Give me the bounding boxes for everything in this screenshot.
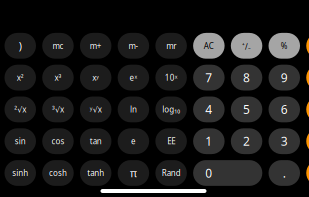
staticText: mc: [52, 40, 63, 51]
staticText: 1: [205, 133, 212, 149]
staticText: eˣ: [129, 72, 137, 83]
button[interactable]: x³: [42, 65, 74, 90]
button[interactable]: ×: [306, 65, 309, 90]
staticText: 9: [281, 70, 288, 85]
button[interactable]: sinh: [4, 160, 36, 186]
button[interactable]: ln: [118, 96, 149, 122]
button[interactable]: mc: [42, 33, 74, 59]
button[interactable]: eˣ: [118, 65, 149, 90]
button[interactable]: cosh: [42, 160, 74, 186]
button[interactable]: −: [306, 96, 309, 122]
staticText: sin: [15, 136, 26, 146]
button[interactable]: 10ˣ: [155, 65, 187, 90]
staticText: sinh: [12, 168, 28, 178]
staticText: EE: [167, 136, 175, 146]
staticText: e: [131, 136, 136, 146]
button[interactable]: tanh: [80, 160, 111, 186]
button[interactable]: +: [306, 128, 309, 154]
button[interactable]: ): [4, 33, 36, 59]
button[interactable]: 8: [231, 65, 262, 90]
button[interactable]: cos: [42, 128, 74, 154]
staticText: ³√x: [52, 104, 64, 115]
staticText: .: [283, 165, 286, 181]
button[interactable]: ²√x: [4, 96, 36, 122]
staticText: m+: [90, 40, 102, 51]
button[interactable]: 7: [193, 65, 225, 90]
button[interactable]: tan: [80, 128, 111, 154]
staticText: AC: [204, 40, 214, 51]
button[interactable]: π: [118, 160, 149, 186]
staticText: ln: [130, 104, 137, 115]
button[interactable]: 1: [193, 128, 225, 154]
staticText: xʸ: [92, 72, 99, 83]
button[interactable]: 9: [268, 65, 300, 90]
button[interactable]: sin: [4, 128, 36, 154]
staticText: mr: [166, 40, 176, 51]
button[interactable]: ʸ√x: [80, 96, 111, 122]
button[interactable]: 6: [268, 96, 300, 122]
button[interactable]: Rand: [155, 160, 187, 186]
staticText: 5: [243, 101, 250, 117]
staticText: cos: [51, 136, 64, 146]
staticText: cosh: [49, 168, 67, 178]
button[interactable]: xʸ: [80, 65, 111, 90]
staticText: 4: [205, 101, 212, 117]
button[interactable]: EE: [155, 128, 187, 154]
staticText: tanh: [87, 168, 104, 178]
button[interactable]: mr: [155, 33, 187, 59]
staticText: ): [19, 39, 22, 53]
button[interactable]: 0: [193, 160, 262, 186]
staticText: tan: [90, 136, 102, 146]
staticText: log₁₀: [162, 104, 180, 115]
staticText: x²: [17, 72, 24, 83]
staticText: Rand: [162, 168, 181, 178]
staticText: 6: [281, 101, 288, 117]
button[interactable]: ⁺∕₋: [231, 33, 262, 59]
staticText: %: [281, 40, 288, 51]
button[interactable]: AC: [193, 33, 225, 59]
button[interactable]: m-: [118, 33, 149, 59]
button[interactable]: ÷: [306, 33, 309, 59]
button[interactable]: log₁₀: [155, 96, 187, 122]
staticText: ⁺∕₋: [242, 40, 251, 51]
staticText: 8: [243, 70, 250, 85]
staticText: ²√x: [14, 104, 26, 115]
button[interactable]: .: [268, 160, 300, 186]
button[interactable]: e: [118, 128, 149, 154]
button[interactable]: x²: [4, 65, 36, 90]
staticText: 3: [281, 133, 288, 149]
button[interactable]: =: [306, 160, 309, 186]
staticText: 0: [205, 165, 212, 181]
staticText: ʸ√x: [90, 104, 102, 115]
staticText: x³: [54, 72, 61, 83]
staticText: π: [130, 166, 137, 180]
button[interactable]: 4: [193, 96, 225, 122]
button[interactable]: 3: [268, 128, 300, 154]
button[interactable]: m+: [80, 33, 111, 59]
button[interactable]: %: [268, 33, 300, 59]
button[interactable]: 5: [231, 96, 262, 122]
button[interactable]: ³√x: [42, 96, 74, 122]
staticText: 7: [205, 70, 212, 85]
staticText: 2: [243, 133, 250, 149]
staticText: m-: [128, 40, 138, 51]
button[interactable]: 2: [231, 128, 262, 154]
staticText: 10ˣ: [165, 72, 178, 83]
